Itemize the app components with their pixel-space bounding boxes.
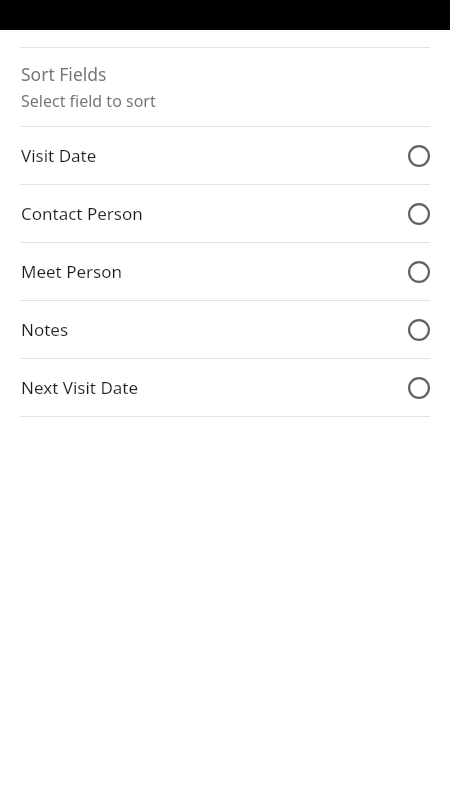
staticText: Select field to sort	[21, 90, 156, 112]
button[interactable]: Notes	[0, 301, 450, 358]
staticText: Meet Person	[21, 260, 122, 283]
staticText: Sort Fields	[21, 62, 107, 86]
staticText: Notes	[21, 318, 69, 341]
button[interactable]: Meet Person	[0, 243, 450, 300]
staticText: Contact Person	[21, 202, 143, 225]
button[interactable]: Next Visit Date	[0, 359, 450, 416]
button[interactable]: Contact Person	[0, 185, 450, 242]
staticText: Next Visit Date	[21, 376, 139, 399]
staticText: Visit Date	[21, 144, 97, 167]
button[interactable]: Visit Date	[0, 127, 450, 184]
